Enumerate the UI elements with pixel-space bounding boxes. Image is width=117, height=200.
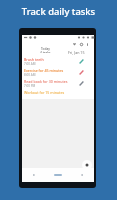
button[interactable]: Add task — [82, 160, 92, 170]
button[interactable]: Exercise for 45 minutes — [22, 67, 94, 78]
button[interactable]: Read book for 30 minutes — [22, 78, 94, 89]
staticText: Fri, Jan 15 — [68, 50, 85, 55]
button[interactable]: Brush teeth — [22, 56, 94, 67]
button[interactable]: Edit task — [78, 69, 85, 76]
button[interactable]: Sort — [71, 42, 77, 47]
button[interactable]: Filter — [78, 42, 84, 47]
staticText: Today — [41, 47, 50, 51]
staticText: Track daily tasks — [0, 5, 117, 18]
button[interactable]: Edit task — [78, 80, 85, 87]
staticText: Brush teeth — [24, 57, 44, 62]
button[interactable]: Workout for 15 minutes — [22, 89, 94, 100]
staticText: Exercise for 45 minutes — [24, 68, 64, 73]
staticText: 7:00 AM — [24, 62, 36, 66]
button[interactable]: Home — [54, 174, 62, 176]
staticText: Read book for 30 minutes — [24, 79, 68, 84]
button[interactable]: Back — [31, 172, 37, 178]
staticText: 8:00 AM — [24, 73, 36, 77]
button[interactable]: Edit task — [78, 58, 85, 65]
button[interactable]: Recents — [79, 172, 85, 178]
staticText: Workout for 15 minutes — [24, 90, 65, 95]
staticText: 7:00 PM — [24, 84, 36, 88]
staticText: 4 tasks — [40, 51, 51, 53]
button[interactable]: More options — [85, 42, 90, 47]
